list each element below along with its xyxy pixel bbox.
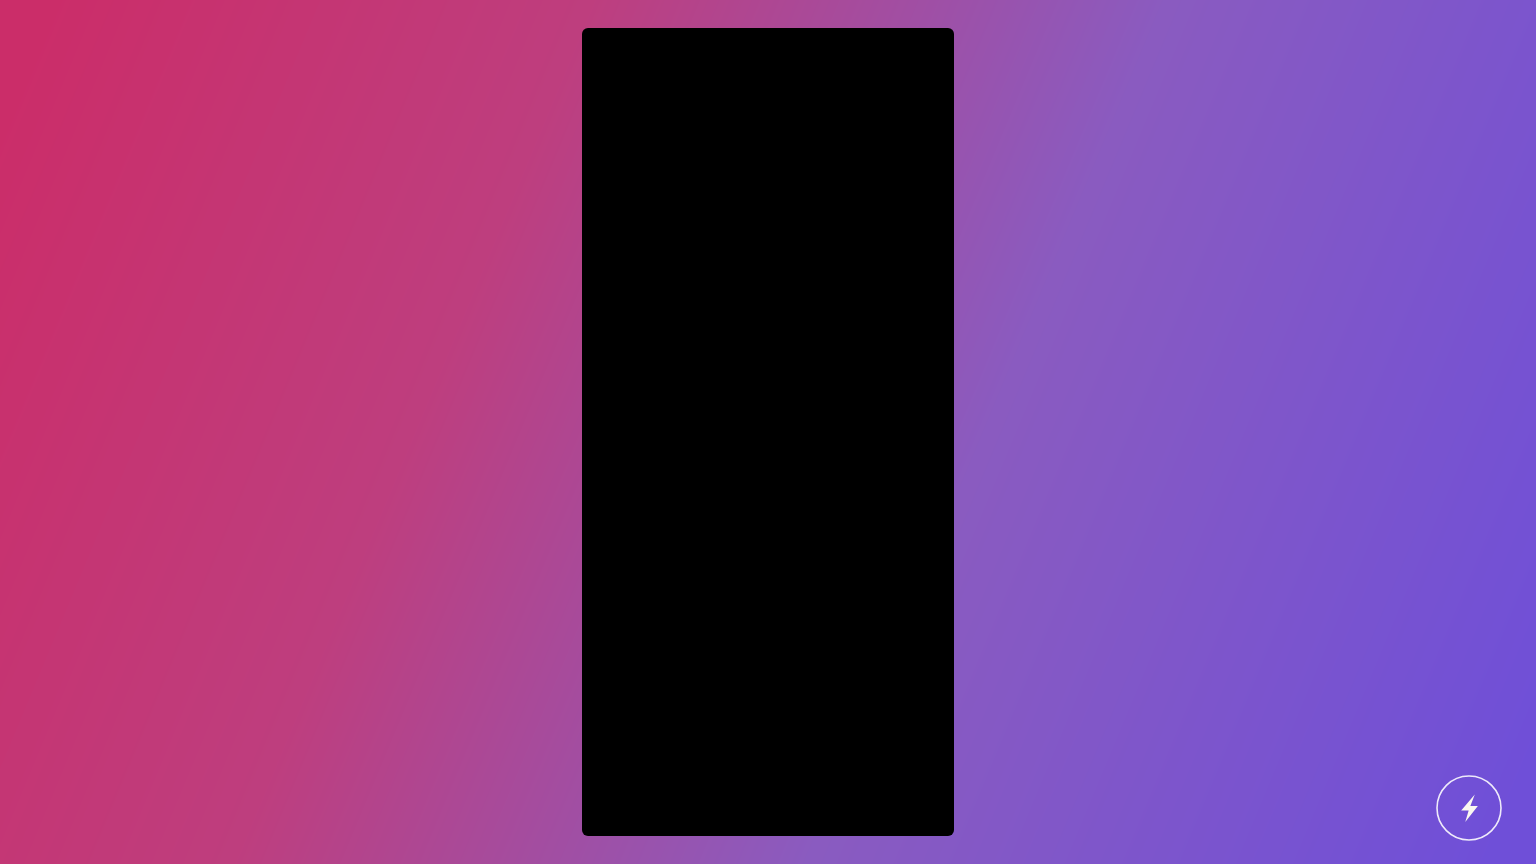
button[interactable]: Quick actions bbox=[1435, 774, 1503, 842]
